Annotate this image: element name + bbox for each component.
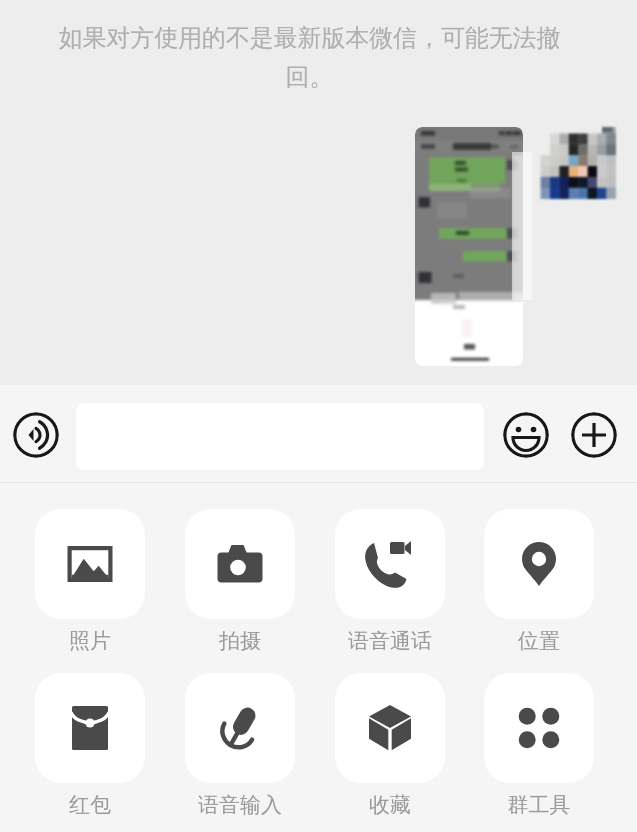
button[interactable]: Image message <box>415 127 523 366</box>
button[interactable]: 位置 <box>484 509 594 654</box>
button[interactable]: More <box>571 412 617 458</box>
staticText: 照片 <box>35 628 145 654</box>
staticText: 语音输入 <box>185 792 295 818</box>
staticText: 位置 <box>484 628 594 654</box>
staticText: 红包 <box>35 792 145 818</box>
button[interactable]: 拍摄 <box>185 509 295 654</box>
button[interactable]: 语音通话 <box>335 509 445 654</box>
button[interactable]: 红包 <box>35 673 145 818</box>
staticText: 语音通话 <box>335 628 445 654</box>
staticText: 收藏 <box>335 792 445 818</box>
staticText: 群工具 <box>484 792 594 818</box>
button[interactable]: Voice input <box>13 412 59 458</box>
staticText: 拍摄 <box>185 628 295 654</box>
button[interactable]: Emoji <box>503 412 549 458</box>
button[interactable]: 群工具 <box>484 673 594 818</box>
button[interactable]: 照片 <box>35 509 145 654</box>
button[interactable]: Photo message <box>540 127 616 201</box>
button[interactable]: 收藏 <box>335 673 445 818</box>
staticText: 如果对方使用的不是最新版本微信，可能无法撤回。 <box>57 23 562 92</box>
button[interactable]: 语音输入 <box>185 673 295 818</box>
